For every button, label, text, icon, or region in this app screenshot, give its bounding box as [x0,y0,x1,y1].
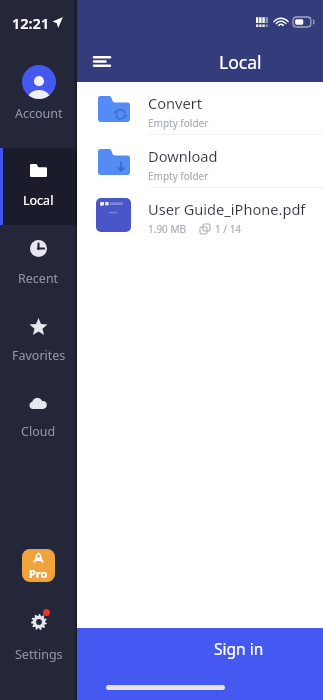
staticText: 12:21 [12,13,50,33]
staticText: Convert [148,93,203,113]
staticText: Local [23,192,54,209]
staticText: User Guide_iPhone.pdf [148,199,306,219]
button[interactable]: Convert [77,82,323,134]
staticText: 1.90 MB [148,222,187,236]
button[interactable]: Favorites [0,319,77,364]
staticText: Settings [15,646,63,663]
button[interactable]: Account [0,65,77,122]
button[interactable]: User Guide_iPhone.pdf [77,188,323,240]
button[interactable]: Local [0,164,77,209]
button[interactable]: Download [77,135,323,187]
staticText: Pro [29,566,48,581]
button[interactable]: Cloud [0,397,77,440]
staticText: Sign in [214,638,264,659]
button[interactable]: Recent [0,240,77,287]
button[interactable]: Upgrade to Pro [22,549,55,582]
button[interactable]: Settings [0,614,77,663]
staticText: Cloud [21,423,56,440]
staticText: Empty folder [148,116,209,130]
button[interactable] [0,148,77,225]
button[interactable]: Sign in [77,628,323,700]
staticText: Account [15,105,63,122]
staticText: Download [148,146,218,166]
staticText: Empty folder [148,169,209,183]
staticText: 1 / 14 [215,222,242,236]
staticText: Recent [18,270,59,287]
staticText: Favorites [12,347,66,364]
staticText: Local [219,50,262,74]
button[interactable]: Menu [86,45,118,77]
